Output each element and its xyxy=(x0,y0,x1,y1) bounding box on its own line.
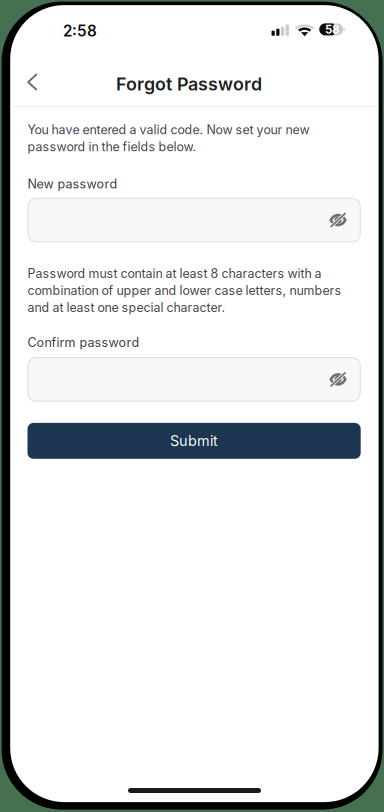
button[interactable]: Submit xyxy=(27,423,361,459)
staticText: 58 xyxy=(325,23,339,37)
staticText: New password xyxy=(27,176,117,192)
staticText: Submit xyxy=(170,432,218,449)
button[interactable]: Show confirm password xyxy=(27,357,361,402)
button[interactable]: Back xyxy=(17,66,48,97)
staticText: 2:58 xyxy=(63,22,97,40)
staticText: Confirm password xyxy=(27,335,139,350)
staticText: Forgot Password xyxy=(116,73,262,95)
staticText: You have entered a valid code. Now set y… xyxy=(27,122,309,154)
button[interactable]: Show new password xyxy=(27,198,361,242)
staticText: Password must contain at least 8 charact… xyxy=(27,266,341,315)
